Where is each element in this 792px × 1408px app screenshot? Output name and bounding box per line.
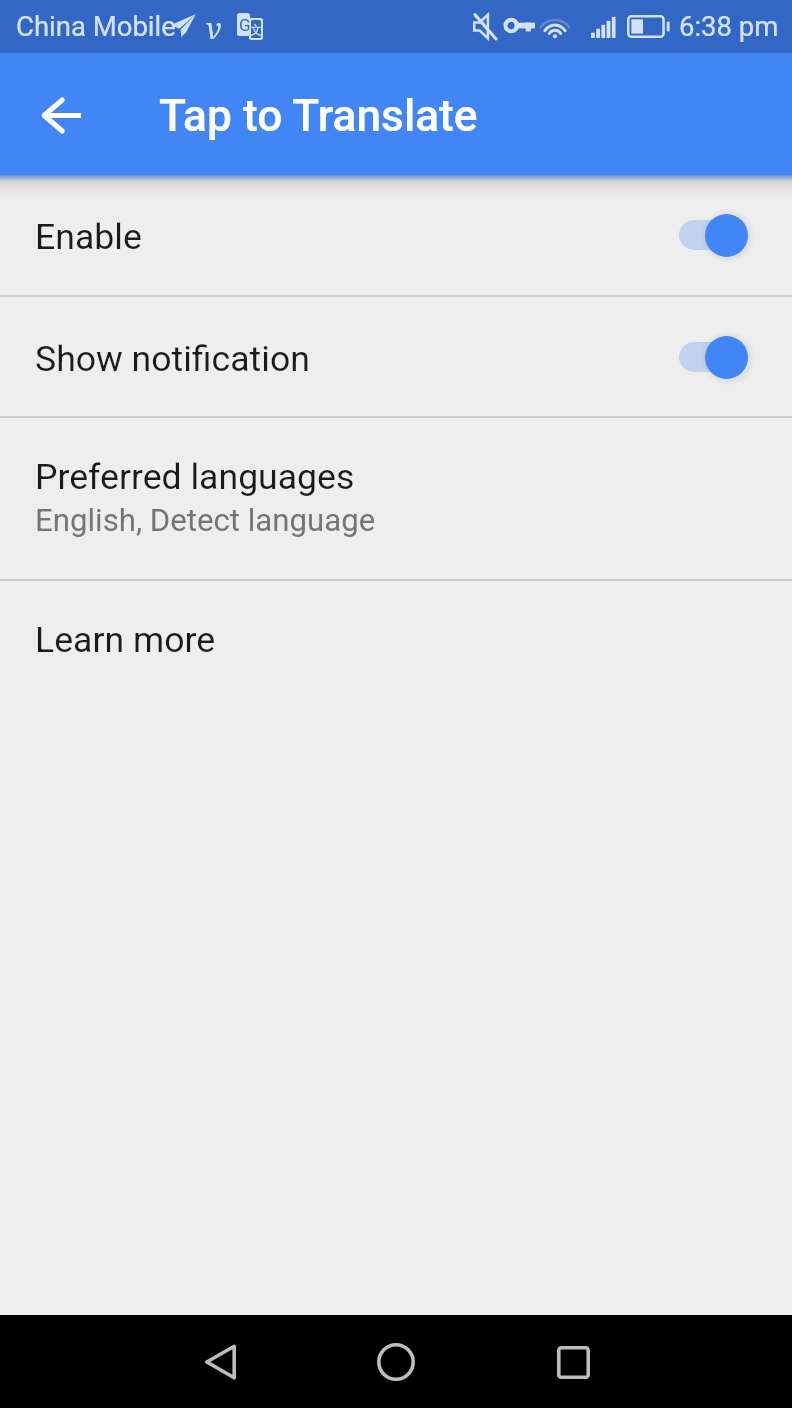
button[interactable]: Learn more [0,581,792,701]
button[interactable]: Navigate up [20,74,102,156]
button[interactable]: Recent apps [533,1322,613,1402]
button[interactable]: Preferred languages [0,418,792,579]
button[interactable]: Enable [0,175,792,295]
staticText: 6:38 pm [679,10,779,42]
button[interactable]: Show notification [0,297,792,416]
staticText: English, Detect language [35,502,376,539]
staticText: Enable [35,216,678,258]
staticText: Preferred languages [35,456,355,498]
staticText: G [239,15,250,35]
staticText: Tap to Translate [159,90,478,142]
button[interactable]: Home [356,1322,436,1402]
staticText: 文 [250,22,262,37]
staticText: China Mobile [16,10,176,42]
staticText: v [206,8,222,47]
button[interactable]: Back [180,1322,260,1402]
staticText: Learn more [35,619,216,661]
staticText: Show notification [35,338,678,380]
